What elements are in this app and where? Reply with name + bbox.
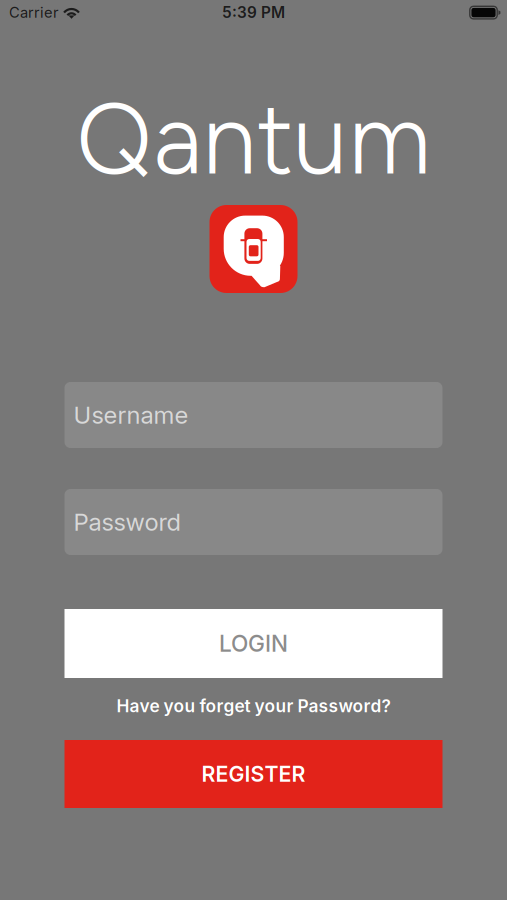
staticText: Qantum [76,80,431,198]
staticText: LOGIN [219,630,288,657]
staticText: Have you forget your Password? [116,695,390,716]
button[interactable]: LOGIN [64,609,442,678]
staticText: 5:39 PM [222,3,285,22]
button[interactable]: REGISTER [64,740,442,808]
staticText: Carrier [9,4,59,21]
staticText: Password [73,507,180,536]
staticText: REGISTER [201,761,305,787]
staticText: Username [73,400,188,429]
button[interactable]: Have you forget your Password? [116,691,390,721]
